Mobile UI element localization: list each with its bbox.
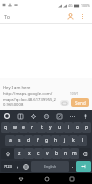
staticText: v [46,150,49,157]
staticText: 100% [81,3,90,8]
staticText: k [72,137,75,144]
button[interactable]: Translate [55,112,63,120]
button[interactable]: q [1,122,10,133]
button[interactable]: u [55,122,64,133]
staticText: z [18,150,21,157]
staticText: c [37,150,40,157]
staticText: t [41,124,43,131]
staticText: g [45,137,49,144]
button[interactable]: a [5,135,15,146]
staticText: n [64,150,68,157]
button[interactable]: Send [71,98,89,107]
button[interactable]: e [19,122,28,133]
button[interactable]: h [51,135,60,146]
button[interactable]: l [78,135,87,146]
button[interactable]: p [82,122,91,133]
button[interactable]: k [69,135,78,146]
button[interactable]: d [24,135,33,146]
button[interactable]: SIM selector [60,100,69,106]
staticText: h [54,137,58,144]
button[interactable]: t [37,122,46,133]
button[interactable]: s [15,135,24,146]
staticText: e [22,124,25,131]
button[interactable]: Voice input [81,112,89,120]
button[interactable]: Stickers [16,112,24,120]
staticText: f [37,137,39,144]
button[interactable]: Shift [1,148,14,159]
staticText: i [68,124,70,131]
staticText: . [72,163,74,170]
staticText: w [13,124,17,131]
button[interactable]: x [24,148,34,159]
button[interactable]: y [46,122,55,133]
button[interactable]: w [10,122,19,133]
button[interactable]: f [33,135,42,146]
button[interactable]: Enter [76,161,91,172]
button[interactable]: Backspace [79,148,91,159]
button[interactable]: Emoji [42,112,50,120]
button[interactable]: j [60,135,69,146]
button[interactable]: More options [77,11,88,22]
button[interactable]: Google search [3,112,11,120]
button[interactable]: n [61,148,70,159]
button[interactable]: v [43,148,52,159]
button[interactable]: Settings [29,112,37,120]
staticText: http://maps.google.com/maps?q=loc:48.617… [3,91,58,107]
staticText: a [9,137,12,144]
staticText: English [44,164,57,169]
button[interactable]: Back [15,173,26,184]
button[interactable]: Change language [21,161,31,172]
staticText: u [58,124,62,131]
staticText: To [4,13,11,20]
staticText: ?123 [4,164,12,169]
staticText: 4G [68,3,73,8]
button[interactable]: g [42,135,51,146]
button[interactable]: More keyboard options [68,112,76,120]
staticText: q [4,124,8,131]
button[interactable]: i [64,122,73,133]
button[interactable]: English [31,161,69,172]
staticText: p [85,124,89,131]
staticText: y [49,124,52,131]
button[interactable]: Home [41,173,52,184]
staticText: b [55,150,59,157]
staticText: d [27,137,31,144]
staticText: 109/1 [70,92,79,96]
button[interactable]: Recent apps [66,173,77,184]
staticText: r [31,124,34,131]
staticText: m [72,150,77,157]
button[interactable]: Add recipient from contacts [65,11,76,22]
staticText: x [28,150,31,157]
staticText: o [76,124,80,131]
button[interactable]: b [52,148,61,159]
button[interactable]: , [14,161,21,172]
staticText: , [17,163,19,170]
staticText: j [64,137,66,144]
button[interactable]: ?123 [1,161,14,172]
staticText: Send [75,100,86,106]
button[interactable]: z [14,148,24,159]
button[interactable]: c [34,148,43,159]
button[interactable]: o [73,122,82,133]
staticText: s [18,137,21,144]
button[interactable]: . [69,161,76,172]
staticText: Hey I am here [3,85,31,91]
button[interactable]: m [70,148,79,159]
button[interactable]: r [28,122,37,133]
staticText: l [82,137,84,144]
